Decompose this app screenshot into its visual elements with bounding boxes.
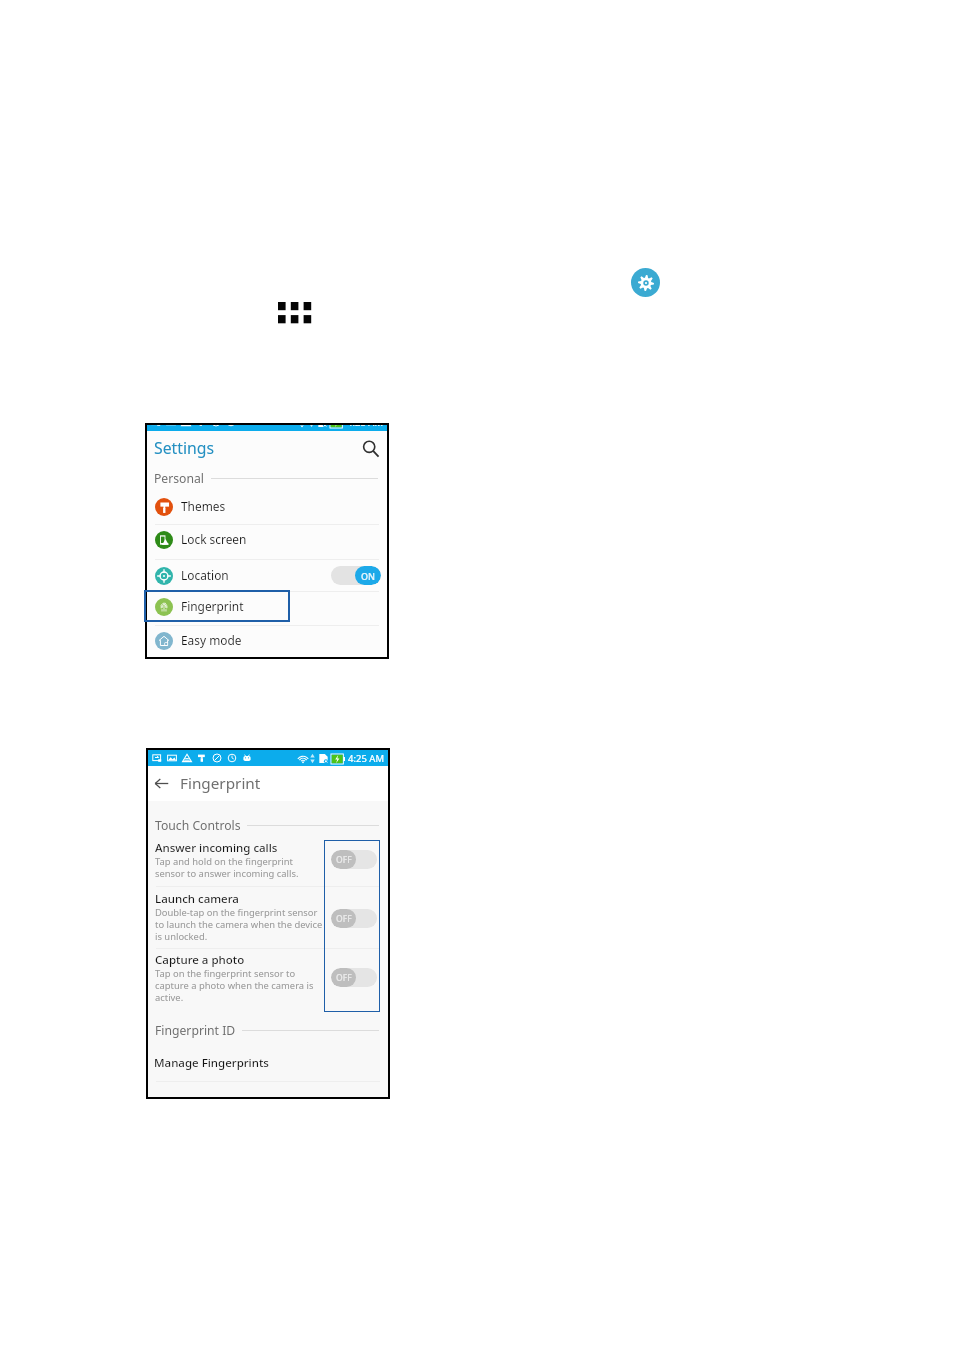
staticText: Personal	[154, 470, 205, 487]
button[interactable]: ON	[331, 566, 381, 585]
button[interactable]: OFF	[331, 909, 377, 928]
staticText: Tap and hold on the fingerprint sensor t…	[155, 855, 299, 880]
staticText: Settings	[154, 437, 215, 459]
button[interactable]: Fingerprint	[147, 590, 387, 623]
staticText: OFF	[336, 913, 352, 925]
button[interactable]: Back	[154, 776, 169, 791]
staticText: Tap on the fingerprint sensor to capture…	[155, 967, 314, 1004]
staticText: Double-tap on the fingerprint sensor to …	[155, 906, 323, 943]
button[interactable]: Manage Fingerprints	[148, 1051, 388, 1075]
staticText: 4:25 AM	[348, 752, 385, 765]
button[interactable]: Easy mode	[147, 624, 387, 657]
staticText: Capture a photo	[155, 952, 245, 968]
staticText: OFF	[336, 972, 352, 984]
button[interactable]: Lock screen	[147, 523, 387, 556]
staticText: ON	[361, 570, 376, 582]
button[interactable]: OFF	[331, 850, 377, 869]
button[interactable]: Location	[147, 559, 387, 592]
staticText: Touch Controls	[155, 817, 241, 834]
staticText: Fingerprint ID	[155, 1022, 236, 1039]
staticText: Easy mode	[181, 632, 242, 648]
staticText: Launch camera	[155, 891, 239, 907]
button[interactable]: Launch camera	[155, 891, 328, 944]
staticText: Location	[181, 567, 229, 583]
staticText: Fingerprint	[181, 598, 244, 614]
staticText: Answer incoming calls	[155, 840, 278, 856]
staticText: 4:25 AM	[347, 425, 384, 429]
button[interactable]: Themes	[147, 490, 387, 523]
button[interactable]: Search	[362, 440, 380, 458]
staticText: Lock screen	[181, 531, 247, 547]
button[interactable]: Settings	[631, 268, 660, 297]
button[interactable]: Capture a photo	[155, 952, 328, 1005]
staticText: OFF	[336, 854, 352, 866]
button[interactable]: Answer incoming calls	[155, 840, 328, 881]
button[interactable]: All apps	[278, 297, 314, 325]
button[interactable]: OFF	[331, 968, 377, 987]
staticText: Themes	[181, 498, 226, 514]
staticText: Manage Fingerprints	[154, 1055, 269, 1071]
staticText: Fingerprint	[180, 773, 261, 794]
